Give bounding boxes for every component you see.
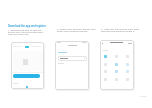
button[interactable] bbox=[115, 63, 118, 66]
button[interactable] bbox=[104, 55, 107, 58]
staticText: 3. Now you can access your new app and t… bbox=[101, 27, 143, 33]
staticText: Download the app and register bbox=[8, 24, 46, 27]
button[interactable] bbox=[115, 70, 118, 73]
button[interactable] bbox=[58, 56, 87, 61]
staticText: 2. Enter your account details and press … bbox=[57, 27, 99, 33]
staticText: 1. Explore the app to see the extras you… bbox=[8, 28, 47, 36]
button[interactable] bbox=[126, 70, 129, 73]
button[interactable] bbox=[126, 63, 129, 66]
button[interactable] bbox=[13, 74, 40, 78]
